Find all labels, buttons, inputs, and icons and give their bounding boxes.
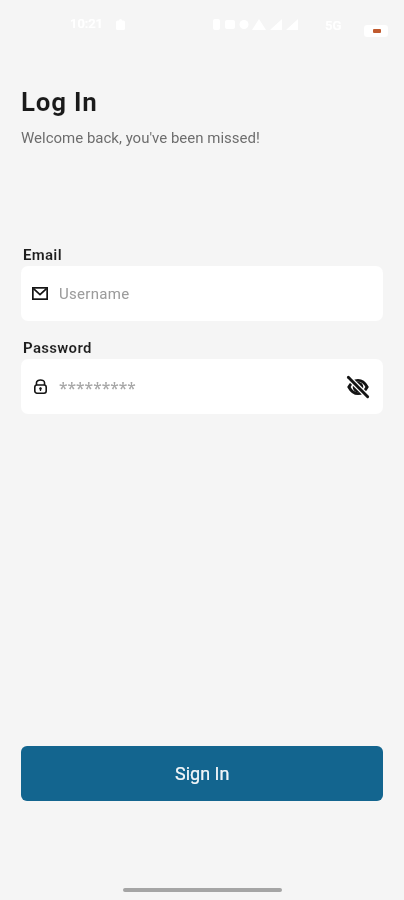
staticText: Email (23, 246, 62, 264)
staticText: Username (59, 285, 130, 303)
button[interactable]: Sign In (21, 746, 383, 801)
staticText: Welcome back, you've been missed! (21, 129, 260, 147)
staticText: Password (23, 339, 92, 357)
staticText: 5G (325, 18, 342, 33)
button[interactable]: Password input (21, 359, 383, 414)
staticText: ********* (59, 377, 136, 398)
staticText: 10:21 (70, 16, 104, 31)
button[interactable]: Email input (21, 266, 383, 321)
staticText: Sign In (175, 763, 230, 784)
button[interactable]: Show password (341, 370, 375, 404)
staticText: Log In (21, 87, 98, 117)
